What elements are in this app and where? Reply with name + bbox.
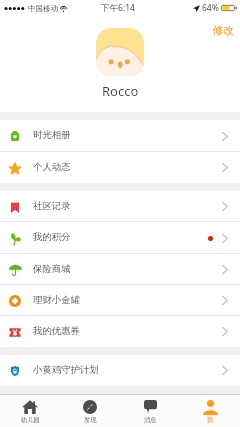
button[interactable]: 时光相册	[0, 120, 240, 152]
button[interactable]: 我	[180, 395, 240, 427]
staticText: 小黄鸡守护计划	[33, 364, 99, 376]
button[interactable]: 幼儿园	[0, 395, 60, 427]
button[interactable]: 消息	[120, 395, 180, 427]
button[interactable]: 修改	[213, 16, 240, 37]
staticText: 消息	[144, 416, 157, 424]
staticText: 幼儿园	[21, 416, 40, 424]
button[interactable]: 我的优惠券	[0, 316, 240, 347]
button[interactable]: 理财小金罐	[0, 285, 240, 316]
button[interactable]: 个人动态	[0, 152, 240, 183]
staticText: 我的积分	[33, 231, 71, 243]
staticText: Rocco	[102, 82, 139, 100]
button[interactable]: 发现	[60, 395, 120, 427]
staticText: 理财小金罐	[33, 294, 80, 306]
staticText: 个人动态	[33, 161, 71, 173]
button[interactable]: 社区记录	[0, 191, 240, 222]
staticText: 我的优惠券	[33, 325, 80, 337]
staticText: 修改	[213, 24, 234, 37]
staticText: 时光相册	[33, 129, 71, 141]
staticText: 发现	[84, 416, 97, 424]
button[interactable]: 我的积分	[0, 222, 240, 254]
staticText: 下午6:14	[101, 2, 135, 14]
staticText: 社区记录	[33, 200, 71, 212]
button[interactable]: 小黄鸡守护计划	[0, 355, 240, 386]
button[interactable]: 保险商城	[0, 254, 240, 285]
staticText: 中国移动	[28, 4, 58, 13]
staticText: 我	[207, 416, 214, 424]
staticText: 64%	[202, 2, 219, 14]
staticText: 保险商城	[33, 263, 71, 275]
